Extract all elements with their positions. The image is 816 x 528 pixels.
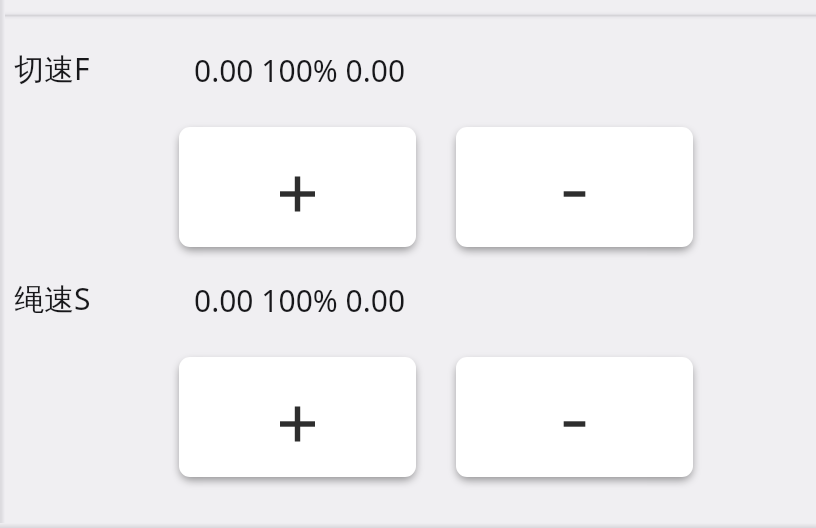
button[interactable]: Increase cutting speed [179,127,416,247]
staticText: 0.00 100% 0.00 [194,50,406,91]
staticText: 绳速S [14,278,91,319]
button[interactable]: Increase rope speed [179,357,416,477]
staticText: 0.00 100% 0.00 [194,280,406,321]
staticText: 切速F [14,48,90,89]
button[interactable]: Decrease cutting speed [456,127,693,247]
button[interactable]: Decrease rope speed [456,357,693,477]
